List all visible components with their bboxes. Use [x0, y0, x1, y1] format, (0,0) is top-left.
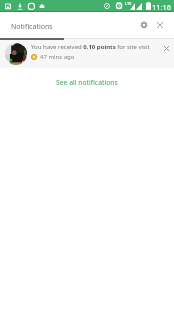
button[interactable]: Settings — [136, 17, 152, 33]
button[interactable]: Dismiss notification — [157, 39, 174, 58]
staticText: Notifications — [11, 22, 53, 32]
button[interactable]: See all notifications — [52, 75, 122, 90]
staticText: 47 mins ago — [40, 53, 75, 61]
staticText: 11:16 — [152, 2, 171, 12]
staticText: LTE — [125, 1, 132, 6]
staticText: You have received 0.10 points for site v… — [31, 43, 150, 51]
button[interactable]: Notifications — [0, 14, 64, 40]
staticText: See all notifications — [56, 78, 118, 87]
button[interactable]: Close — [152, 17, 168, 33]
button[interactable]: You have received 0.10 points for site v… — [0, 39, 174, 68]
